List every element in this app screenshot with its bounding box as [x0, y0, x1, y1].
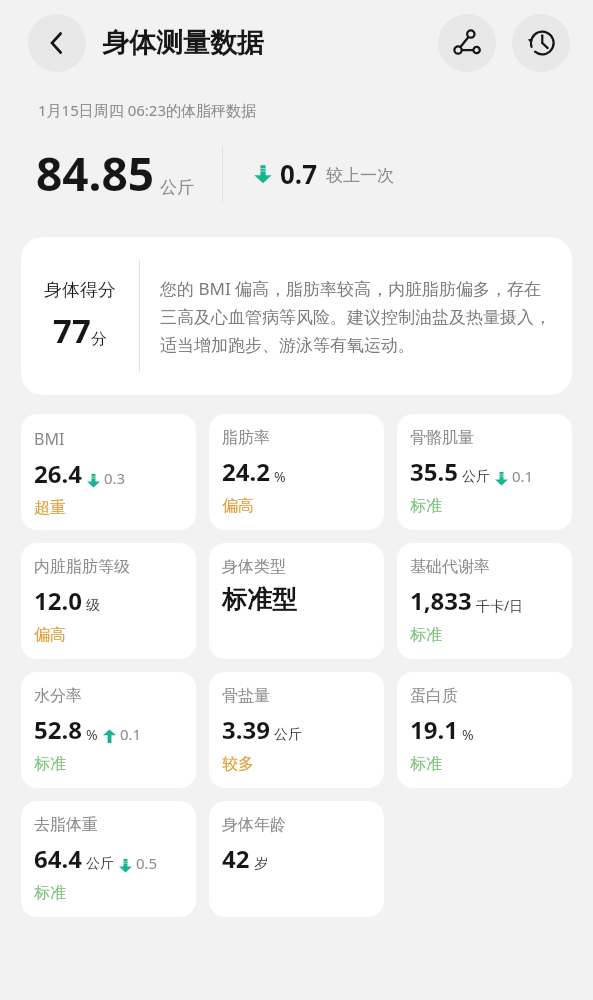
staticText: 77: [53, 308, 91, 353]
staticText: 0.3: [104, 468, 126, 488]
staticText: 内脏脂肪等级: [34, 557, 130, 577]
staticText: 水分率: [34, 686, 82, 706]
staticText: 0.1: [512, 466, 534, 486]
staticText: 公斤: [86, 855, 114, 873]
staticText: 偏高: [222, 496, 254, 516]
staticText: 身体类型: [222, 557, 286, 577]
staticText: 0.7: [280, 156, 318, 191]
staticText: 身体得分: [44, 279, 116, 302]
button[interactable]: 去脂体重: [21, 801, 196, 917]
staticText: 标准型: [222, 584, 297, 615]
button[interactable]: 水分率: [21, 672, 196, 788]
button[interactable]: 身体得分: [21, 237, 572, 395]
staticText: 标准: [410, 625, 442, 645]
staticText: 骨盐量: [222, 686, 270, 706]
staticText: 3.39: [222, 713, 270, 746]
staticText: %: [274, 467, 286, 486]
staticText: 身体年龄: [222, 815, 286, 835]
button[interactable]: 骨骼肌量: [397, 414, 572, 530]
staticText: 0.5: [136, 853, 158, 873]
staticText: 1月15日周四 06:23的体脂秤数据: [38, 100, 256, 120]
button[interactable]: 身体年龄: [209, 801, 384, 917]
staticText: BMI: [34, 428, 65, 450]
staticText: 较上一次: [326, 165, 394, 186]
staticText: 基础代谢率: [410, 557, 490, 577]
staticText: 分: [91, 329, 107, 349]
staticText: 0.1: [120, 724, 142, 744]
staticText: 级: [86, 597, 100, 615]
staticText: 脂肪率: [222, 428, 270, 448]
button[interactable]: Back: [28, 14, 86, 72]
staticText: 52.8: [34, 713, 82, 746]
button[interactable]: Share: [438, 14, 496, 72]
button[interactable]: 蛋白质: [397, 672, 572, 788]
staticText: 公斤: [274, 726, 302, 744]
staticText: 19.1: [410, 713, 458, 746]
staticText: 84.85: [36, 142, 155, 205]
button[interactable]: 脂肪率: [209, 414, 384, 530]
staticText: 标准: [410, 496, 442, 516]
staticText: %: [462, 725, 474, 744]
staticText: 64.4: [34, 842, 82, 875]
staticText: 身体测量数据: [102, 26, 264, 60]
staticText: 26.4: [34, 457, 82, 490]
staticText: 去脂体重: [34, 815, 98, 835]
staticText: 42: [222, 842, 250, 875]
staticText: 您的 BMI 偏高，脂肪率较高，内脏脂肪偏多，存在三高及心血管病等风险。建议控制…: [160, 277, 556, 356]
staticText: 偏高: [34, 625, 66, 645]
staticText: 35.5: [410, 455, 458, 488]
staticText: 标准: [410, 754, 442, 774]
button[interactable]: 骨盐量: [209, 672, 384, 788]
staticText: 1,833: [410, 584, 472, 617]
button[interactable]: BMI: [21, 414, 196, 530]
staticText: %: [86, 725, 98, 744]
staticText: 标准: [34, 883, 66, 903]
staticText: 公斤: [160, 177, 194, 198]
button[interactable]: 身体类型: [209, 543, 384, 659]
staticText: 岁: [254, 855, 268, 873]
staticText: 千卡/日: [476, 596, 524, 615]
staticText: 超重: [34, 498, 66, 518]
staticText: 12.0: [34, 584, 82, 617]
staticText: 标准: [34, 754, 66, 774]
button[interactable]: 内脏脂肪等级: [21, 543, 196, 659]
staticText: 24.2: [222, 455, 270, 488]
staticText: 公斤: [462, 468, 490, 486]
staticText: 较多: [222, 754, 254, 774]
button[interactable]: 基础代谢率: [397, 543, 572, 659]
staticText: 蛋白质: [410, 686, 458, 706]
staticText: 骨骼肌量: [410, 428, 474, 448]
button[interactable]: History: [512, 14, 570, 72]
